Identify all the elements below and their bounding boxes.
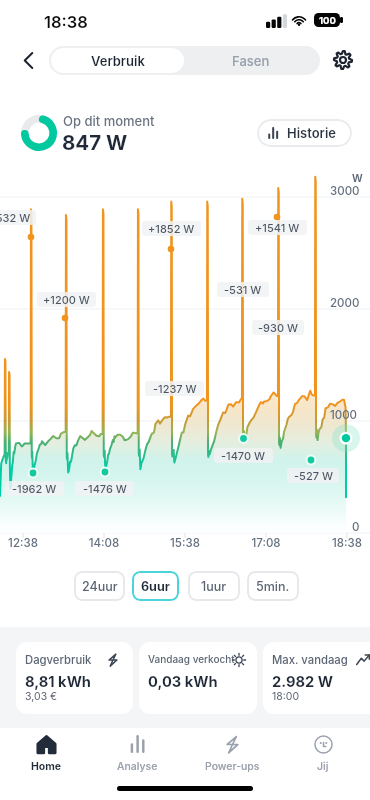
staticText: -531 W [224, 283, 262, 296]
staticText: W [352, 172, 363, 185]
button[interactable]: Fasen [184, 48, 318, 73]
staticText: -930 W [258, 321, 298, 334]
button[interactable]: Back [19, 46, 37, 74]
button[interactable]: Verbruik [51, 48, 184, 73]
staticText: 5min. [256, 579, 290, 594]
button[interactable]: 6uur [132, 571, 179, 601]
staticText: 3000 [330, 184, 360, 198]
button[interactable]: 5min. [247, 571, 299, 601]
staticText: 12:38 [0, 536, 49, 550]
staticText: Power-ups [205, 760, 260, 773]
staticText: +1541 W [255, 221, 300, 234]
staticText: 3,03 € [25, 690, 58, 703]
staticText: 24uur [82, 579, 118, 594]
staticText: 2.982 W [272, 673, 334, 691]
staticText: Fasen [232, 53, 270, 69]
staticText: Analyse [117, 760, 158, 773]
staticText: 0 [352, 520, 360, 534]
staticText: 0,03 kWh [148, 673, 218, 691]
button[interactable]: Home [1, 728, 91, 780]
staticText: 2000 [330, 296, 360, 310]
staticText: Op dit moment [63, 113, 155, 129]
button[interactable]: Dagverbruik [16, 642, 133, 714]
button[interactable]: 1uur [188, 571, 240, 601]
staticText: -1237 W [153, 382, 197, 395]
staticText: 1uur [201, 579, 227, 594]
staticText: 17:08 [240, 536, 292, 550]
staticText: -1470 W [221, 449, 266, 462]
staticText: 18:38 [44, 12, 88, 32]
staticText: 6uur [141, 579, 170, 594]
staticText: -1962 W [12, 482, 57, 495]
staticText: 100 [319, 15, 336, 26]
button[interactable]: 24uur [74, 571, 125, 601]
staticText: 18:00 [272, 690, 300, 703]
staticText: Jij [317, 760, 329, 773]
staticText: 847 W [62, 130, 128, 155]
staticText: +2532 W [0, 211, 31, 224]
button[interactable]: Settings [331, 48, 355, 72]
button[interactable]: Jij [278, 728, 368, 780]
staticText: Verbruik [91, 53, 145, 69]
staticText: Home [31, 760, 62, 773]
staticText: 15:38 [159, 536, 211, 550]
staticText: 14:08 [78, 536, 130, 550]
staticText: Max. vandaag [272, 653, 348, 667]
button[interactable]: Historie [257, 119, 352, 147]
staticText: -527 W [294, 469, 333, 482]
staticText: +1200 W [43, 293, 90, 306]
staticText: +1852 W [148, 222, 195, 235]
staticText: Historie [287, 125, 336, 141]
button[interactable]: Max. vandaag [263, 642, 370, 714]
staticText: Vandaag verkocht [148, 653, 235, 665]
staticText: Dagverbruik [25, 653, 92, 667]
button[interactable]: Power-ups [187, 728, 277, 780]
button[interactable]: Vandaag verkocht [139, 642, 257, 714]
button[interactable]: Analyse [92, 728, 182, 780]
staticText: 8,81 kWh [25, 673, 92, 691]
staticText: 1000 [330, 408, 358, 422]
staticText: -1476 W [83, 482, 127, 495]
staticText: 18:38 [321, 536, 370, 550]
